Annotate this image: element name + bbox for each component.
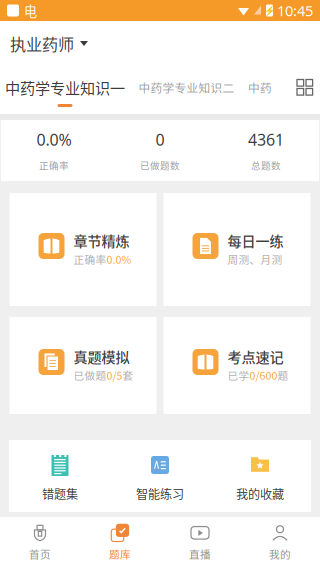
button[interactable]: 每日一练 xyxy=(163,193,310,306)
staticText: 章节精炼 xyxy=(73,230,129,250)
staticText: 0.0% xyxy=(106,251,131,267)
staticText: 中药学专业知识二 xyxy=(138,79,234,96)
button[interactable]: 首页 xyxy=(0,517,80,568)
staticText: 题库 xyxy=(109,546,131,562)
staticText: 中药 xyxy=(248,79,272,96)
staticText: 正确率 xyxy=(39,158,69,172)
staticText: 4361 xyxy=(248,129,284,150)
staticText: 0/5 xyxy=(106,367,122,383)
button[interactable]: 直播 xyxy=(160,517,240,568)
button[interactable]: 考点速记 xyxy=(163,317,310,414)
staticText: 电 xyxy=(24,1,37,20)
staticText: 已学 xyxy=(227,367,249,383)
staticText: 已做题 xyxy=(73,367,106,383)
staticText: 真题模拟 xyxy=(73,346,129,366)
staticText: 智能练习 xyxy=(136,485,184,503)
staticText: 错题集 xyxy=(42,485,78,503)
staticText: 每日一练 xyxy=(227,230,283,250)
staticText: 总题数 xyxy=(251,158,281,172)
staticText: 直播 xyxy=(189,546,211,562)
staticText: 我的收藏 xyxy=(236,485,284,503)
staticText: 考点速记 xyxy=(227,346,283,366)
button[interactable]: 题库 xyxy=(80,517,160,568)
staticText: 我的 xyxy=(269,546,291,562)
staticText: 首页 xyxy=(29,546,51,562)
button[interactable]: 真题模拟 xyxy=(9,317,156,414)
button[interactable]: 错题集 xyxy=(10,440,110,512)
staticText: 已做题数 xyxy=(140,158,180,172)
staticText: 周测、月测 xyxy=(227,251,282,267)
button[interactable]: 执业药师 xyxy=(0,21,98,66)
staticText: 0/600 xyxy=(249,367,277,383)
staticText: 执业药师 xyxy=(10,32,74,55)
staticText: 题 xyxy=(277,367,288,383)
button[interactable]: 中药 xyxy=(243,66,277,114)
staticText: 0.0% xyxy=(36,129,71,150)
staticText: 0 xyxy=(155,129,164,150)
staticText: ⚡ xyxy=(263,5,275,16)
button[interactable]: 我的收藏 xyxy=(210,440,310,512)
button[interactable]: 中药学专业知识二 xyxy=(130,66,243,114)
button[interactable]: 智能练习 xyxy=(110,440,210,512)
staticText: 套 xyxy=(122,367,133,383)
button[interactable]: All subjects xyxy=(297,66,320,114)
staticText: 中药学专业知识一 xyxy=(5,76,125,98)
button[interactable]: 章节精炼 xyxy=(9,193,156,306)
button[interactable]: 中药学专业知识一 xyxy=(0,66,130,114)
staticText: 正确率 xyxy=(73,251,106,267)
staticText: 10:45 xyxy=(277,1,313,20)
button[interactable]: 我的 xyxy=(240,517,320,568)
